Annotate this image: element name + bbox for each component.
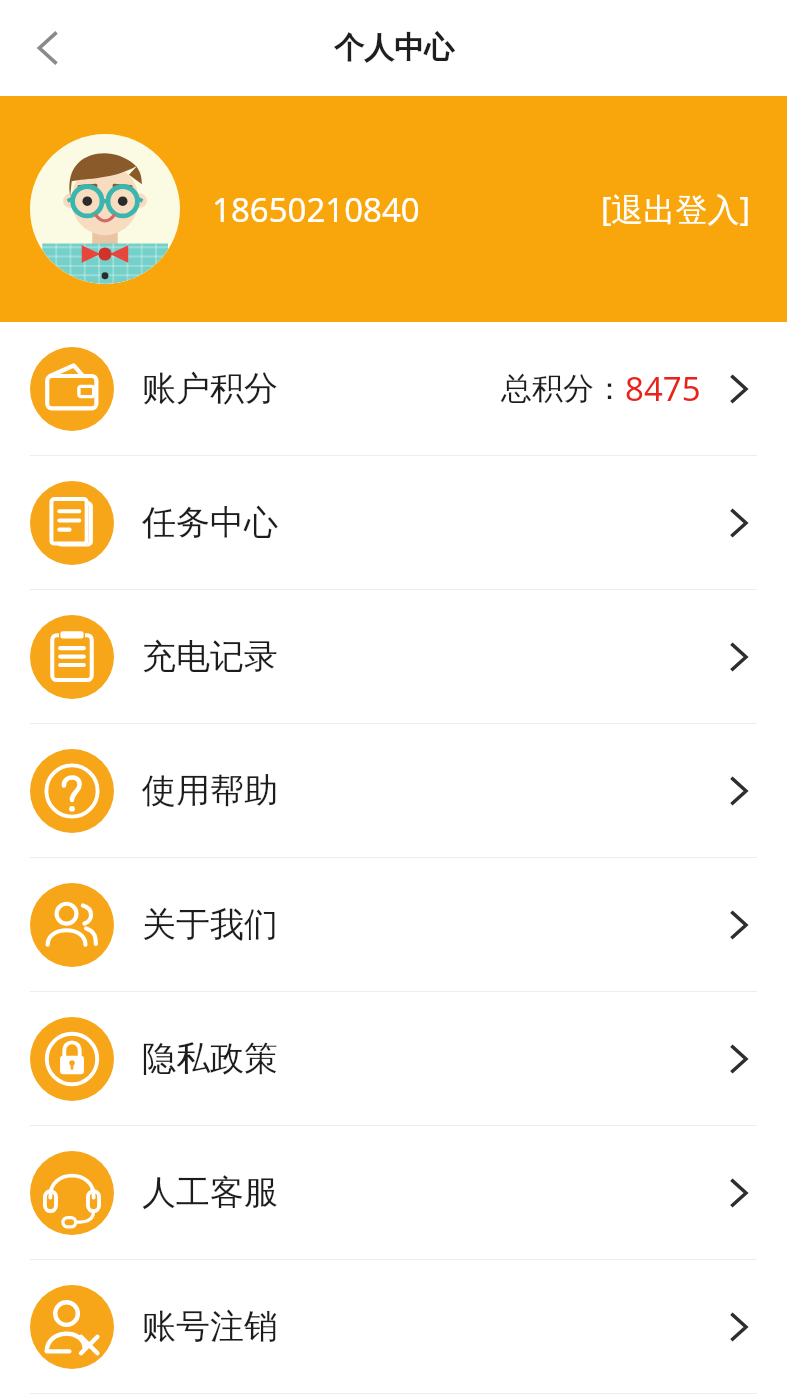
button[interactable]: 账号注销 [0, 1260, 787, 1393]
button[interactable]: 人工客服 [0, 1126, 787, 1259]
staticText: 8475 [625, 366, 701, 411]
staticText: 账户积分 [142, 367, 278, 410]
button[interactable]: [退出登入] [597, 175, 755, 243]
staticText: 任务中心 [142, 501, 278, 544]
button[interactable]: 使用帮助 [0, 724, 787, 857]
button[interactable]: 充电记录 [0, 590, 787, 723]
staticText: 总积分： [501, 369, 625, 408]
button[interactable]: 关于我们 [0, 858, 787, 991]
staticText: 人工客服 [142, 1171, 278, 1214]
button[interactable]: 隐私政策 [0, 992, 787, 1125]
staticText: [退出登入] [601, 187, 751, 231]
staticText: 充电记录 [142, 635, 278, 678]
staticText: 账号注销 [142, 1305, 278, 1348]
button[interactable]: Back [14, 14, 82, 82]
button[interactable]: 任务中心 [0, 456, 787, 589]
staticText: 使用帮助 [142, 769, 278, 812]
staticText: 关于我们 [142, 903, 278, 946]
button[interactable]: 账户积分 [0, 322, 787, 455]
staticText: 隐私政策 [142, 1037, 278, 1080]
staticText: 个人中心 [334, 29, 454, 67]
staticText: 18650210840 [212, 187, 420, 232]
